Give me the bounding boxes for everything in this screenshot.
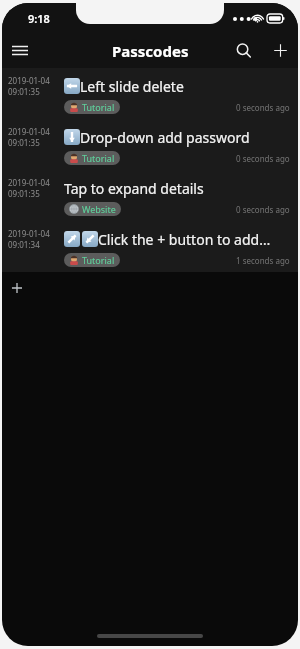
button[interactable]: 2019-01-04: [2, 68, 298, 119]
button[interactable]: 2019-01-04: [2, 170, 298, 221]
staticText: Tutorial: [82, 254, 115, 266]
button[interactable]: Tutorial: [64, 100, 120, 114]
button[interactable]: Tutorial: [64, 253, 120, 267]
button[interactable]: Menu: [2, 33, 38, 68]
staticText: 0 seconds ago: [236, 153, 290, 164]
staticText: 2019-01-04: [8, 75, 50, 86]
staticText: Click the + button to add…: [98, 230, 271, 249]
button[interactable]: Website: [64, 202, 121, 216]
button[interactable]: Search: [226, 33, 262, 68]
staticText: Tutorial: [82, 101, 115, 113]
staticText: 09:01:34: [8, 239, 40, 250]
staticText: 0 seconds ago: [236, 102, 290, 113]
button[interactable]: 2019-01-04: [2, 119, 298, 170]
button[interactable]: Add item: [2, 272, 298, 304]
staticText: 2019-01-04: [8, 126, 50, 137]
staticText: Drop-down add password: [80, 128, 250, 147]
staticText: 0 seconds ago: [236, 204, 290, 215]
button[interactable]: Tutorial: [64, 151, 120, 165]
staticText: 09:01:35: [8, 86, 40, 97]
staticText: Left slide delete: [80, 77, 184, 96]
staticText: 2019-01-04: [8, 177, 50, 188]
staticText: Passcodes: [112, 41, 189, 61]
staticText: 09:01:35: [8, 137, 40, 148]
staticText: Tutorial: [82, 152, 115, 164]
staticText: 2019-01-04: [8, 228, 50, 239]
staticText: 9:18: [28, 11, 50, 26]
staticText: Website: [82, 203, 116, 215]
staticText: 09:01:35: [8, 188, 40, 199]
staticText: Tap to expand details: [64, 179, 204, 198]
staticText: 1 seconds ago: [236, 255, 290, 266]
button[interactable]: Add passcode: [262, 33, 298, 68]
button[interactable]: 2019-01-04: [2, 221, 298, 272]
